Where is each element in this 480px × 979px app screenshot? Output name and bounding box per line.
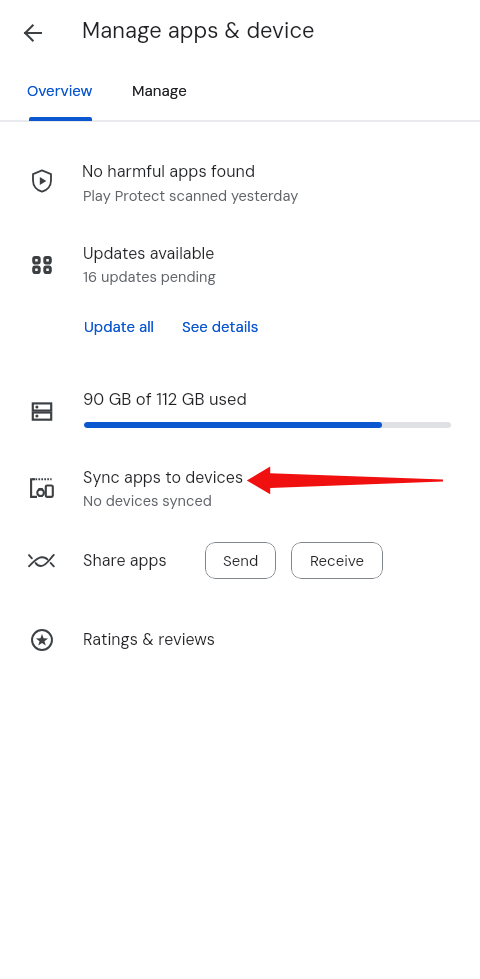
staticText: Manage: [132, 81, 187, 101]
staticText: No devices synced: [83, 492, 212, 511]
staticText: Manage: [132, 81, 187, 101]
button[interactable]: [0, 452, 480, 516]
staticText: See details: [182, 317, 259, 337]
staticText: Update all: [84, 317, 154, 337]
button[interactable]: [0, 232, 480, 294]
button[interactable]: [174, 312, 266, 342]
staticText: 16 updates pending: [83, 268, 216, 287]
button[interactable]: [120, 68, 200, 112]
staticText: See details: [182, 317, 259, 337]
button[interactable]: [0, 610, 480, 670]
staticText: 90 GB of 112 GB used: [83, 389, 247, 411]
staticText: Share apps: [83, 550, 167, 571]
staticText: Play Protect scanned yesterday: [83, 187, 299, 206]
staticText: Overview: [27, 81, 93, 101]
button[interactable]: [76, 312, 162, 342]
staticText: Send: [223, 551, 259, 571]
button[interactable]: [0, 372, 480, 440]
staticText: Manage apps & device: [82, 16, 315, 45]
button[interactable]: Send: [205, 542, 276, 579]
button[interactable]: Back: [12, 12, 54, 54]
button[interactable]: [16, 68, 105, 112]
button[interactable]: [0, 150, 480, 212]
staticText: No harmful apps found: [82, 161, 255, 182]
staticText: Overview: [27, 81, 93, 101]
staticText: Receive: [310, 551, 365, 571]
staticText: Updates available: [83, 243, 215, 264]
staticText: Sync apps to devices: [83, 467, 244, 488]
button[interactable]: Receive: [291, 542, 383, 579]
staticText: Ratings & reviews: [83, 629, 216, 650]
staticText: Update all: [84, 317, 154, 337]
